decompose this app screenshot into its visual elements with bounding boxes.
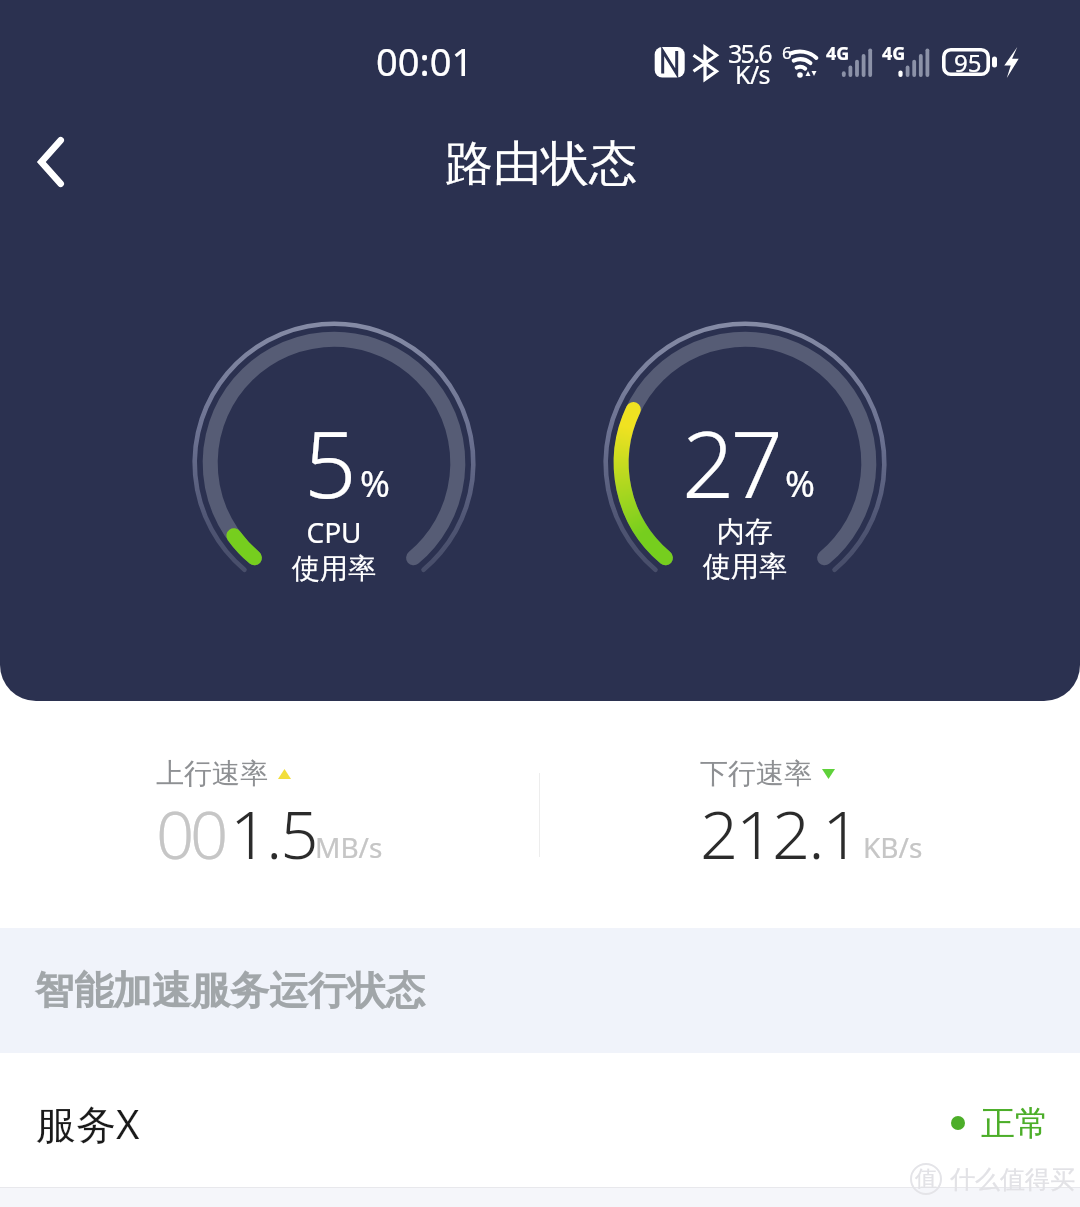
staticText: 路由状态 xyxy=(445,134,637,194)
staticText: % xyxy=(785,459,815,508)
staticText: 正常 xyxy=(981,1102,1049,1145)
staticText: 4G xyxy=(826,41,850,66)
staticText: MB/s xyxy=(315,828,383,866)
button[interactable]: 服务X xyxy=(0,1053,1080,1193)
staticText: 1.5 xyxy=(230,787,317,878)
staticText: CPU xyxy=(306,513,362,551)
staticText: 6 xyxy=(782,41,792,64)
staticText: 内存 xyxy=(717,514,773,549)
staticText: 使用率 xyxy=(703,549,787,584)
button[interactable]: Back xyxy=(3,114,99,210)
staticText: 5 xyxy=(304,400,353,525)
staticText: 使用率 xyxy=(292,551,376,586)
staticText: 什么值得买 xyxy=(950,1164,1075,1195)
staticText: 95 xyxy=(954,46,982,79)
staticText: 212.1 xyxy=(700,787,859,878)
staticText: 27 xyxy=(682,400,780,525)
staticText: % xyxy=(360,459,390,508)
staticText: 00:01 xyxy=(376,35,474,87)
staticText: 服务X xyxy=(36,1096,140,1151)
staticText: 00 xyxy=(156,787,224,878)
staticText: 上行速率 xyxy=(156,756,268,791)
staticText: K/s xyxy=(735,57,770,91)
staticText: KB/s xyxy=(863,828,923,866)
staticText: 值 xyxy=(915,1165,937,1193)
staticText: 4G xyxy=(882,41,906,66)
staticText: 智能加速服务运行状态 xyxy=(35,966,425,1015)
staticText: 下行速率 xyxy=(700,756,812,791)
staticText: 35.6 xyxy=(728,36,771,70)
